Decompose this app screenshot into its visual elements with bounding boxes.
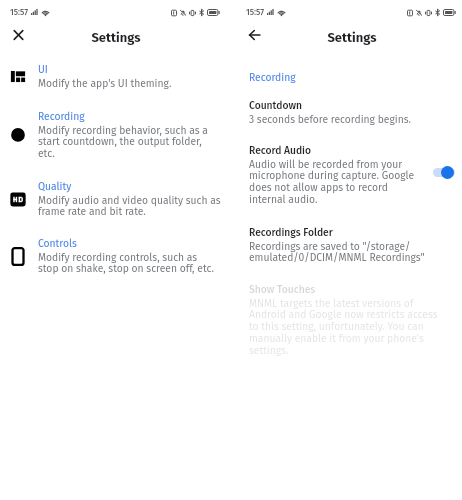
staticText: Record Audio — [249, 144, 312, 156]
staticText: Modify audio and video quality such as f… — [38, 194, 221, 218]
staticText: Settings — [56, 30, 176, 46]
button[interactable]: Show Touches — [231, 283, 462, 357]
staticText: Modify recording controls, such as stop … — [38, 251, 214, 275]
staticText: Controls — [38, 237, 77, 249]
staticText: Modify the app's UI theming. — [38, 77, 172, 89]
button[interactable]: UI — [0, 63, 231, 89]
button[interactable]: Back — [243, 24, 265, 46]
staticText: Settings — [292, 30, 412, 46]
staticText: Recording — [38, 110, 85, 122]
button[interactable]: Recording — [0, 110, 231, 160]
staticText: MNML targets the latest versions of Andr… — [249, 297, 438, 357]
button[interactable]: Recordings Folder — [231, 226, 462, 264]
button[interactable]: Close — [7, 24, 29, 46]
staticText: Quality — [38, 180, 72, 192]
button[interactable]: Controls — [0, 237, 231, 275]
staticText: Recordings Folder — [249, 226, 333, 238]
staticText: UI — [38, 63, 48, 75]
button[interactable]: Record audio toggle — [429, 160, 462, 186]
staticText: Audio will be recorded from your microph… — [249, 158, 415, 206]
staticText: Modify recording behavior, such as a sta… — [38, 124, 208, 160]
staticText: 15:57 — [10, 7, 28, 17]
button[interactable]: Record Audio — [231, 144, 462, 206]
staticText: 15:57 — [246, 7, 264, 17]
staticText: Countdown — [249, 99, 302, 111]
staticText: Recording — [249, 71, 296, 83]
button[interactable]: Quality — [0, 180, 231, 218]
button[interactable]: Countdown — [231, 99, 462, 125]
staticText: Recordings are saved to "/storage/ emula… — [249, 240, 425, 264]
staticText: Show Touches — [249, 283, 316, 295]
staticText: 3 seconds before recording begins. — [249, 113, 411, 125]
